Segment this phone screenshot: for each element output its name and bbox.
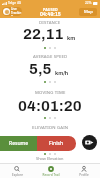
staticText: PAUSED (43, 7, 58, 12)
staticText: 4G (17, 1, 22, 5)
staticText: MOVING TIME (35, 89, 66, 95)
button[interactable]: Explore (0, 164, 34, 178)
staticText: Live Tracking (11, 7, 22, 16)
staticText: Finish (49, 140, 64, 147)
staticText: Map (84, 9, 93, 15)
button[interactable]: Finish (37, 136, 76, 151)
staticText: Resume (9, 140, 29, 147)
staticText: 22,11 (23, 26, 64, 42)
button[interactable]: Resume (0, 136, 37, 151)
staticText: Explore (12, 173, 23, 177)
staticText: AVERAGE SPEED (33, 53, 68, 59)
button[interactable]: Map (79, 8, 97, 16)
button[interactable]: Live Tracking (2, 7, 22, 16)
staticText: ELEVATION GAIN (32, 124, 69, 130)
staticText: 5,5 (29, 61, 52, 77)
staticText: 22% (85, 1, 92, 5)
staticText: Show Elevation (36, 156, 64, 161)
staticText: Record Trail (42, 173, 60, 177)
button[interactable]: Take photo (82, 135, 97, 150)
staticText: Profile (79, 173, 89, 177)
button[interactable]: Profile (67, 164, 100, 178)
staticText: km/h (55, 70, 69, 76)
button[interactable]: Record Trail (34, 164, 67, 178)
staticText: 04:49:15 (40, 12, 61, 17)
staticText: 04:01:20 (18, 98, 82, 114)
staticText: DISTANCE (39, 19, 61, 25)
staticText: Telge (8, 1, 16, 5)
staticText: km (67, 35, 76, 41)
